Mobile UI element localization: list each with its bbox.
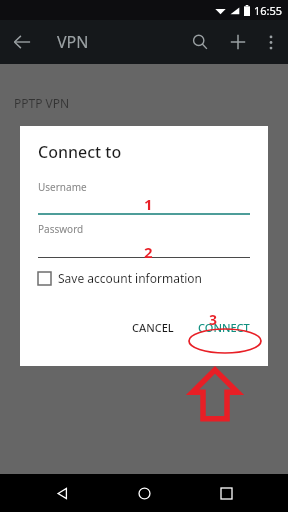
staticText: 2	[144, 242, 153, 262]
button[interactable]: Save account information	[38, 268, 203, 288]
staticText: Save account information	[58, 270, 203, 286]
staticText: PPTP VPN	[14, 95, 70, 111]
staticText: VPN	[57, 31, 89, 53]
button[interactable]: Navigate up	[5, 25, 39, 59]
staticText: 16:55	[254, 3, 283, 18]
button[interactable]: Search	[181, 23, 219, 61]
button[interactable]	[38, 257, 250, 258]
staticText: CANCEL	[132, 320, 174, 335]
button[interactable]: CONNECT	[190, 315, 258, 340]
button[interactable]: Recent apps	[206, 474, 246, 512]
button[interactable]: Add VPN profile	[219, 23, 257, 61]
button[interactable]: Home	[124, 474, 164, 512]
button[interactable]: CANCEL	[124, 315, 182, 340]
staticText: Username	[38, 180, 87, 194]
staticText: Connect to	[38, 141, 122, 163]
staticText: 1	[144, 194, 153, 214]
staticText: Password	[38, 222, 84, 236]
button[interactable]: Back	[42, 474, 82, 512]
staticText: 3	[209, 310, 218, 329]
button[interactable]: More options	[257, 28, 285, 56]
staticText: CONNECT	[198, 320, 250, 335]
